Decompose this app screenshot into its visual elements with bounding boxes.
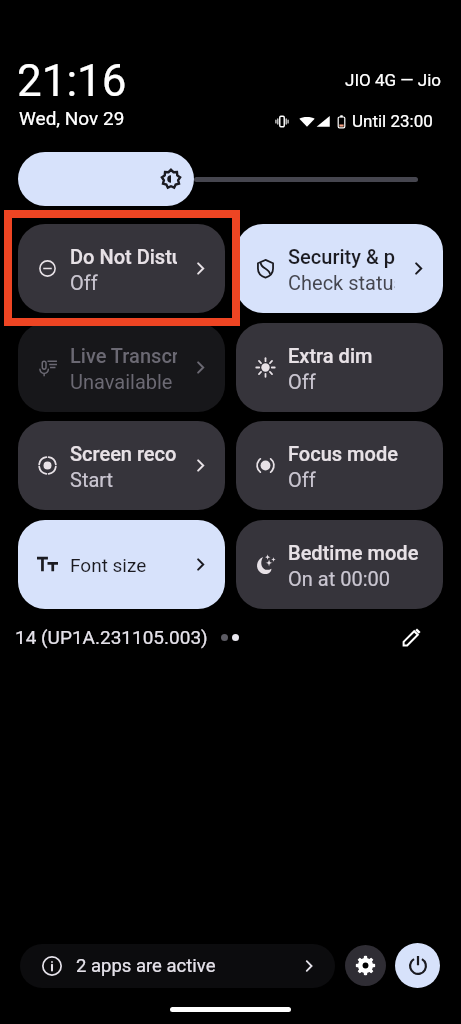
staticText: Focus mode [288, 442, 398, 465]
staticText: Check status [288, 271, 395, 294]
staticText: Wed, Nov 29 [19, 107, 125, 129]
button[interactable]: Settings [345, 945, 386, 986]
staticText: Off [288, 370, 316, 393]
staticText: Bedtime mode [288, 541, 419, 564]
button[interactable] [18, 152, 442, 206]
staticText: 14 (UP1A.231105.003) [15, 626, 208, 648]
staticText: Font size [70, 554, 147, 576]
staticText: Do Not Disturb [70, 245, 177, 268]
button[interactable]: Live Transcribe [18, 323, 225, 412]
button[interactable]: Power [395, 943, 440, 988]
staticText: JIO 4G — Jio [345, 70, 441, 90]
button[interactable]: Focus mode [236, 421, 443, 510]
button[interactable]: Edit tiles [395, 622, 429, 652]
staticText: 21:16 [17, 55, 127, 107]
staticText: Until 23:00 [352, 111, 433, 131]
button[interactable]: 2 apps are active [20, 944, 335, 988]
button[interactable]: Extra dim [236, 323, 443, 412]
button[interactable]: Screen record [18, 421, 225, 510]
button[interactable]: Security & privacy [236, 224, 443, 313]
button[interactable]: Do Not Disturb [18, 224, 225, 313]
staticText: Extra dim [288, 344, 373, 367]
staticText: 2 apps are active [76, 955, 216, 977]
staticText: On at 00:00 [288, 567, 390, 590]
staticText: Off [70, 271, 98, 294]
staticText: Live Transcribe [70, 344, 177, 367]
staticText: Unavailable [70, 370, 173, 393]
staticText: Off [288, 468, 316, 491]
staticText: Security & privacy [288, 245, 395, 268]
staticText: Screen record [70, 442, 177, 465]
staticText: Start [70, 468, 114, 491]
button[interactable]: Bedtime mode [236, 520, 443, 609]
button[interactable]: Font size [18, 520, 225, 609]
